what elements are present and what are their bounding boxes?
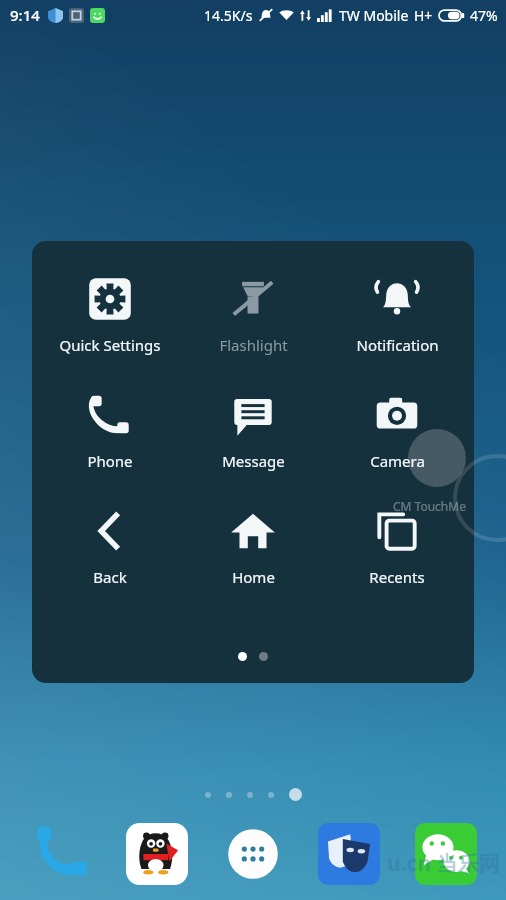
button[interactable]: Message xyxy=(187,385,319,475)
button[interactable]: Notification xyxy=(331,269,463,359)
button[interactable]: Home xyxy=(187,501,319,591)
staticText: Phone xyxy=(87,451,133,471)
staticText: 47% xyxy=(470,6,498,25)
staticText: 14.5K/s xyxy=(204,6,253,25)
staticText: Notification xyxy=(356,335,439,355)
staticText: u.cn 当乐网 xyxy=(387,849,500,878)
button[interactable]: Quick Settings xyxy=(44,269,176,359)
staticText: Quick Settings xyxy=(59,335,161,355)
staticText: Flashlight xyxy=(219,335,288,355)
staticText: H+ xyxy=(414,6,433,25)
staticText: Camera xyxy=(370,451,425,471)
button[interactable]: Camera xyxy=(331,385,463,475)
button[interactable]: All apps xyxy=(217,818,289,890)
button[interactable]: Phone xyxy=(24,818,96,890)
staticText: CM TouchMe xyxy=(393,498,466,514)
button[interactable]: Themes xyxy=(313,818,385,890)
staticText: TW Mobile xyxy=(339,6,409,25)
button[interactable]: Back xyxy=(44,501,176,591)
button[interactable]: QQ xyxy=(121,818,193,890)
button[interactable]: Recents xyxy=(331,501,463,591)
staticText: Home xyxy=(232,567,275,587)
button[interactable]: WeChat xyxy=(410,818,482,890)
other: CM TouchMe xyxy=(0,0,506,900)
staticText: Message xyxy=(222,451,285,471)
staticText: Recents xyxy=(369,567,425,587)
staticText: 9:14 xyxy=(10,5,40,25)
button[interactable]: Phone xyxy=(44,385,176,475)
button[interactable]: Flashlight xyxy=(187,269,319,359)
staticText: Back xyxy=(93,567,127,587)
